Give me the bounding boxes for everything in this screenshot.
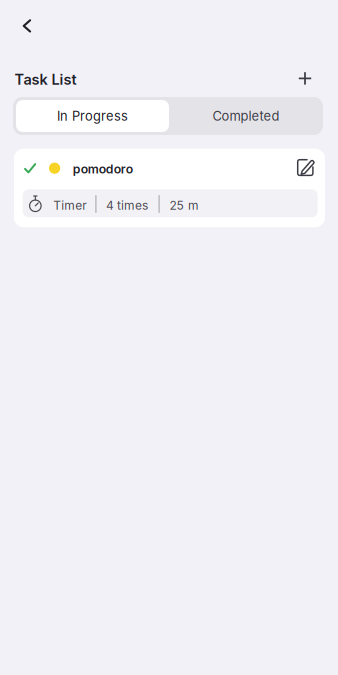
staticText: 25 [170,198,184,213]
button[interactable]: Back [7,6,47,46]
button[interactable]: Edit task [290,153,320,183]
staticText: Task List [14,71,76,88]
staticText: Timer [53,198,87,213]
button[interactable]: Completed [169,100,323,132]
staticText: pomodoro [73,162,133,176]
staticText: m [188,198,199,213]
staticText: 4 times [106,198,148,213]
button[interactable]: Add task [287,60,323,96]
staticText: In Progress [57,108,128,124]
staticText: Completed [212,108,279,124]
button[interactable]: In Progress [16,100,169,132]
